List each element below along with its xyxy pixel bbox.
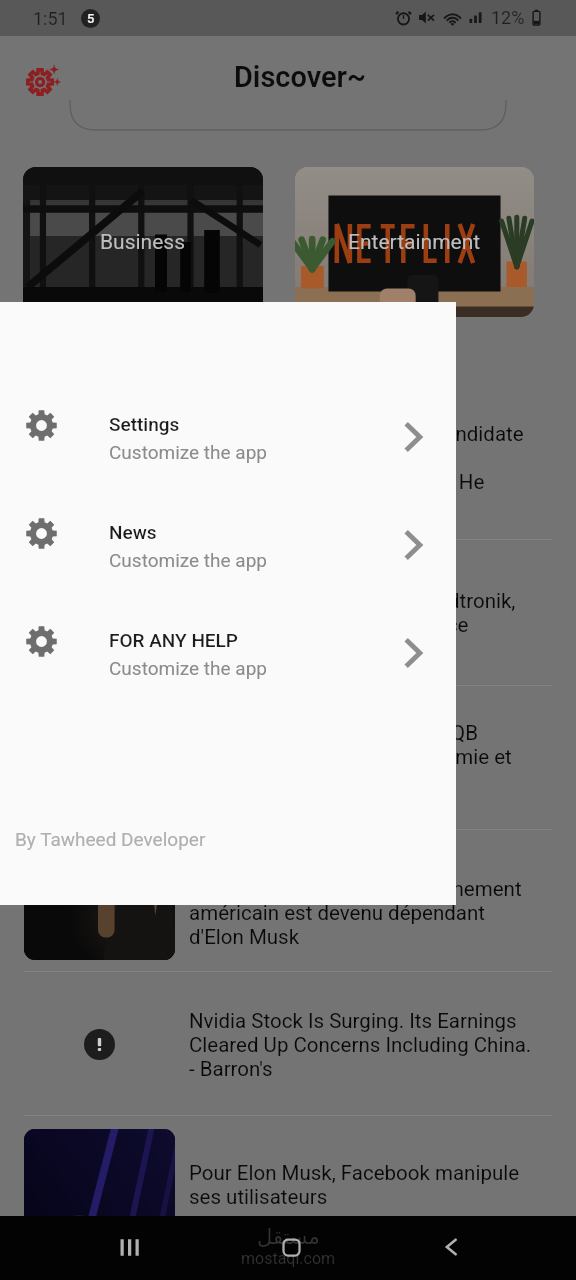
staticText: d'Elon Musk bbox=[189, 925, 300, 949]
button[interactable]: Home bbox=[259, 1216, 323, 1280]
staticText: Customize the app bbox=[109, 441, 268, 463]
button[interactable]: Settings bbox=[19, 54, 75, 110]
staticText: défense : comment le gouvernement bbox=[189, 877, 522, 901]
staticText: Discover~ bbox=[12, 60, 576, 94]
button[interactable]: Pour Elon Musk, Facebook manipule bbox=[0, 1116, 576, 1260]
staticText: - Barron's bbox=[189, 1057, 273, 1081]
staticText: un nouveau patron de l'économie et bbox=[189, 745, 512, 769]
staticText: Business bbox=[100, 230, 186, 255]
button[interactable]: Entertainment bbox=[295, 167, 534, 317]
staticText: Entertainment bbox=[348, 230, 481, 255]
staticText: Les Bleus de Mbappé et leur QB bbox=[189, 721, 478, 745]
staticText: américain est devenu dépendant bbox=[189, 901, 485, 925]
staticText: to lead anti-graft agency bbox=[189, 446, 410, 470]
staticText: Cleared Up Concerns Including China. bbox=[189, 1033, 532, 1057]
staticText: 5 bbox=[87, 11, 95, 26]
staticText: 1:51 bbox=[33, 8, 68, 29]
staticText: 12% bbox=[491, 7, 525, 28]
button[interactable]: Nvidia Stock Is Surging. Its Earnings bbox=[0, 972, 576, 1116]
staticText: Nvidia Stock Is Surging. Its Earnings bbox=[189, 1009, 517, 1033]
staticText: Customize the app bbox=[109, 549, 268, 571]
staticText: ses utilisateurs bbox=[189, 1185, 328, 1209]
button[interactable]: Recent apps bbox=[97, 1216, 161, 1280]
staticText: Pour Elon Musk, Facebook manipule bbox=[189, 1161, 520, 1185]
button[interactable]: Les Bleus de Mbappé et leur QB bbox=[0, 686, 576, 830]
button[interactable]: Zelensky says Ukraine has candidate bbox=[0, 396, 576, 540]
button[interactable]: Settings bbox=[0, 400, 456, 478]
staticText: Settings bbox=[109, 413, 180, 435]
button[interactable]: Espace, internet, fusées : bbox=[0, 830, 576, 972]
button[interactable]: Business bbox=[23, 167, 263, 317]
button[interactable]: Elon Musk's Neuralink vs Medtronik, bbox=[0, 540, 576, 686]
staticText: mostaql.com bbox=[241, 1249, 336, 1268]
staticText: FOR ANY HELP bbox=[109, 629, 238, 651]
staticText: News bbox=[109, 521, 157, 543]
staticText: Zelensky says Ukraine has candidate bbox=[189, 422, 524, 446]
staticText: Elon Musk's Neuralink vs Medtronik, bbox=[189, 589, 516, 613]
staticText: Synchron in the brain-chip race bbox=[189, 613, 469, 637]
button[interactable]: FOR ANY HELP bbox=[0, 616, 456, 694]
staticText: Customize the app bbox=[109, 657, 268, 679]
button[interactable]: News bbox=[0, 508, 456, 586]
staticText: مستقل bbox=[257, 1225, 320, 1249]
staticText: By Tawheed Developer bbox=[15, 828, 206, 850]
staticText: Musk's X Sues Apple, OpenAI He bbox=[189, 470, 485, 494]
button[interactable]: Back bbox=[419, 1216, 483, 1280]
